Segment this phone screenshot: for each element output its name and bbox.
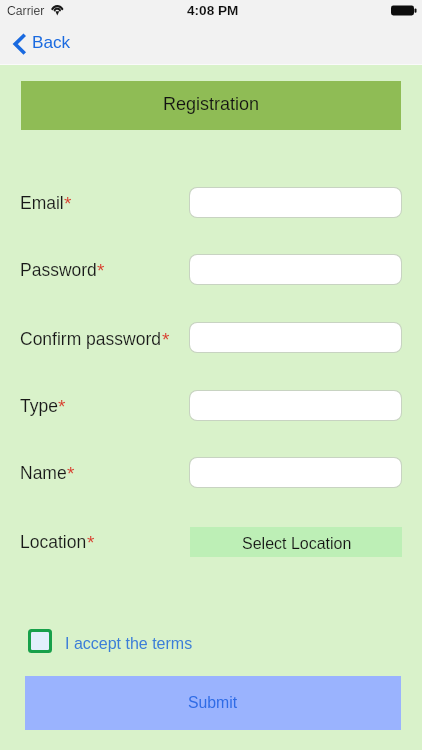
staticText: *	[87, 532, 95, 553]
button[interactable]: Email input	[190, 188, 401, 217]
staticText: *	[67, 463, 75, 484]
button[interactable]: Submit	[25, 676, 401, 730]
button[interactable]: Password input	[190, 255, 401, 284]
button[interactable]: I accept the terms	[22, 623, 201, 659]
staticText: Submit	[188, 694, 238, 712]
staticText: Password	[20, 260, 97, 280]
staticText: Location	[20, 532, 87, 552]
button[interactable]: Name input	[190, 458, 401, 487]
button[interactable]: Confirm password input	[190, 323, 401, 352]
staticText: Name	[20, 463, 67, 483]
staticText: Confirm password	[20, 329, 162, 349]
staticText: *	[162, 329, 170, 350]
staticText: I accept the terms	[65, 635, 193, 653]
button[interactable]: Type input	[190, 391, 401, 420]
staticText: Carrier	[7, 4, 45, 18]
staticText: *	[97, 260, 105, 281]
button[interactable]: Select Location	[190, 527, 402, 557]
button[interactable]: Back	[5, 28, 79, 56]
staticText: Back	[32, 32, 71, 51]
staticText: *	[58, 396, 66, 417]
staticText: Type	[20, 396, 58, 416]
staticText: 4:08 PM	[187, 3, 239, 18]
staticText: Registration	[163, 94, 260, 114]
staticText: Select Location	[242, 535, 352, 553]
staticText: Email	[20, 193, 64, 213]
staticText: *	[64, 193, 72, 214]
